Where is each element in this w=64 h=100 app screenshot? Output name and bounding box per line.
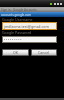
staticText: jmdlacma.test@gmail.com: [4, 24, 49, 29]
button[interactable]: OK: [3, 50, 28, 55]
button[interactable]: • • • • • • • • •: [3, 37, 56, 42]
button[interactable]: Cancel: [32, 50, 56, 55]
button[interactable]: jmdlacma.test@gmail.com: [3, 23, 56, 29]
staticText: • • • • • • • • •: [4, 38, 22, 42]
staticText: Google Username: [2, 17, 33, 22]
staticText: OK: [13, 50, 19, 55]
button[interactable]: Sign in - Google Accounts: [0, 7, 64, 12]
staticText: Cancel: [38, 50, 50, 55]
staticText: accounts.google.com: [1, 13, 32, 17]
staticText: Sign in - Google Accounts: [1, 8, 37, 12]
staticText: Google Password: [2, 30, 32, 35]
button[interactable]: accounts.google.com: [0, 12, 64, 17]
